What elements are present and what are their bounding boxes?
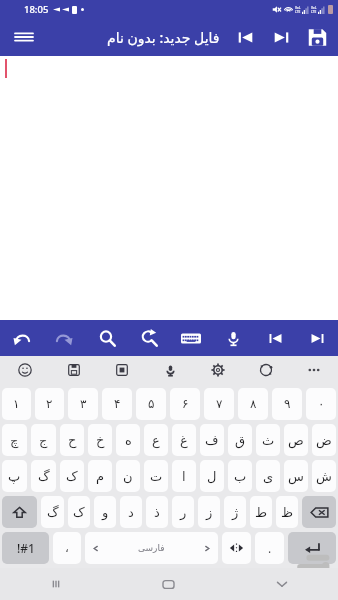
staticText: ع — [152, 433, 160, 448]
button[interactable]: ۲ — [35, 388, 64, 420]
button[interactable]: ط — [250, 496, 272, 528]
button[interactable]: ۳ — [68, 388, 98, 420]
button[interactable]: ص — [284, 424, 308, 456]
staticText: پ — [8, 469, 21, 484]
button[interactable]: ف — [200, 424, 224, 456]
button[interactable]: ۹ — [272, 388, 302, 420]
button[interactable]: ع — [144, 424, 168, 456]
staticText: !#1 — [17, 540, 35, 556]
button[interactable]: ۶ — [170, 388, 200, 420]
button[interactable]: Enter — [288, 532, 336, 564]
button[interactable]: ا — [172, 460, 196, 492]
staticText: ق — [235, 433, 246, 448]
button[interactable]: More options — [290, 356, 338, 384]
button[interactable]: ب — [228, 460, 252, 492]
button[interactable]: چ — [2, 424, 27, 456]
button[interactable]: Go to end — [296, 320, 338, 356]
staticText: ظ — [281, 505, 294, 520]
staticText: ۵ — [148, 397, 155, 411]
staticText: ث — [262, 433, 275, 448]
button[interactable]: Sticker — [98, 356, 146, 384]
button[interactable]: . — [255, 532, 284, 564]
button[interactable]: Redo — [43, 320, 86, 356]
button[interactable]: Space — [85, 532, 218, 564]
button[interactable]: ن — [116, 460, 140, 492]
staticText: غ — [180, 433, 188, 448]
button[interactable]: غ — [172, 424, 196, 456]
button[interactable]: ۱ — [2, 388, 31, 420]
button[interactable]: ل — [200, 460, 224, 492]
button[interactable]: Backspace — [302, 496, 336, 528]
button[interactable]: ث — [256, 424, 280, 456]
button[interactable]: Shift — [2, 496, 37, 528]
staticText: ۱ — [13, 397, 20, 411]
staticText: ت — [150, 469, 163, 484]
staticText: ک — [66, 469, 78, 484]
staticText: ۹ — [284, 397, 291, 411]
button[interactable]: ی — [256, 460, 280, 492]
staticText: فارسی — [138, 543, 165, 553]
button[interactable]: ض — [312, 424, 336, 456]
button[interactable]: Search — [86, 320, 128, 356]
button[interactable]: ح — [60, 424, 84, 456]
button[interactable]: Symbols — [2, 532, 49, 564]
staticText: ط — [255, 505, 268, 520]
button[interactable]: Go to start — [254, 320, 296, 356]
button[interactable]: ، — [53, 532, 81, 564]
button[interactable]: ر — [172, 496, 194, 528]
button[interactable]: ژ — [224, 496, 246, 528]
button[interactable]: Undo — [0, 320, 43, 356]
staticText: ه — [125, 433, 132, 448]
button[interactable]: Voice input — [146, 356, 194, 384]
staticText: م — [96, 469, 105, 484]
button[interactable]: د — [120, 496, 142, 528]
button[interactable]: ذ — [146, 496, 168, 528]
staticText: ض — [316, 433, 332, 448]
button[interactable]: Previous — [227, 19, 263, 55]
button[interactable]: ز — [198, 496, 220, 528]
button[interactable]: ۰ — [306, 388, 336, 420]
button[interactable]: گ — [41, 496, 64, 528]
button[interactable]: س — [284, 460, 308, 492]
button[interactable]: Clipboard — [49, 356, 98, 384]
staticText: ز — [206, 505, 213, 520]
button[interactable]: Keyboard — [170, 320, 212, 356]
staticText: ج — [39, 433, 48, 448]
staticText: ص — [288, 433, 304, 448]
button[interactable]: ش — [312, 460, 336, 492]
button[interactable]: ه — [116, 424, 140, 456]
button[interactable]: ق — [228, 424, 252, 456]
staticText: ۷ — [216, 397, 223, 411]
staticText: . — [268, 540, 272, 556]
button[interactable]: Emoji — [0, 356, 49, 384]
button[interactable]: Find and replace — [128, 320, 170, 356]
button[interactable]: Save — [299, 19, 335, 55]
staticText: LTE — [311, 10, 317, 14]
button[interactable]: ظ — [276, 496, 298, 528]
button[interactable]: Voice — [212, 320, 254, 356]
button[interactable]: ک — [60, 460, 84, 492]
button[interactable]: ت — [144, 460, 168, 492]
button[interactable]: خ — [88, 424, 112, 456]
staticText: ی — [263, 469, 274, 484]
staticText: ف — [205, 433, 219, 448]
button[interactable]: Switch language — [242, 356, 290, 384]
button[interactable]: ۸ — [238, 388, 268, 420]
button[interactable]: و — [94, 496, 116, 528]
button[interactable]: Next — [263, 19, 299, 55]
button[interactable]: پ — [2, 460, 27, 492]
button[interactable]: ۷ — [204, 388, 234, 420]
button[interactable]: Home — [112, 568, 225, 600]
button[interactable]: Recents — [0, 568, 112, 600]
button[interactable]: م — [88, 460, 112, 492]
button[interactable]: ۴ — [102, 388, 132, 420]
button[interactable]: گ — [31, 460, 56, 492]
button[interactable]: ۵ — [136, 388, 166, 420]
staticText: خ — [96, 433, 105, 448]
button[interactable]: Hide keyboard — [225, 568, 338, 600]
button[interactable]: ک — [68, 496, 90, 528]
button[interactable]: Settings — [194, 356, 242, 384]
button[interactable]: Menu — [6, 19, 42, 55]
button[interactable]: Move cursor — [222, 532, 251, 564]
button[interactable]: ج — [31, 424, 56, 456]
